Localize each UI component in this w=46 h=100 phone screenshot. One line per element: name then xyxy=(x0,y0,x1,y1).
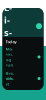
staticText: Lisa xyxy=(4,1,12,51)
staticText: Breakfast xyxy=(5,71,13,86)
staticText: Morning run xyxy=(5,46,13,67)
staticText: Today xyxy=(5,39,16,44)
